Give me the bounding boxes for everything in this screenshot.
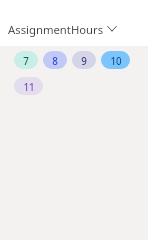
staticText: AssignmentHours: [8, 22, 104, 37]
staticText: 7: [23, 55, 29, 68]
staticText: 9: [81, 55, 87, 68]
other: Change list: [107, 22, 117, 35]
button[interactable]: 8: [43, 51, 67, 69]
staticText: 11: [23, 81, 35, 94]
staticText: 10: [110, 55, 122, 68]
staticText: 8: [52, 55, 58, 68]
button[interactable]: 11: [14, 77, 43, 95]
button[interactable]: 10: [101, 51, 130, 69]
button[interactable]: AssignmentHours: [8, 22, 117, 37]
button[interactable]: 7: [14, 51, 38, 69]
button[interactable]: 9: [72, 51, 96, 69]
